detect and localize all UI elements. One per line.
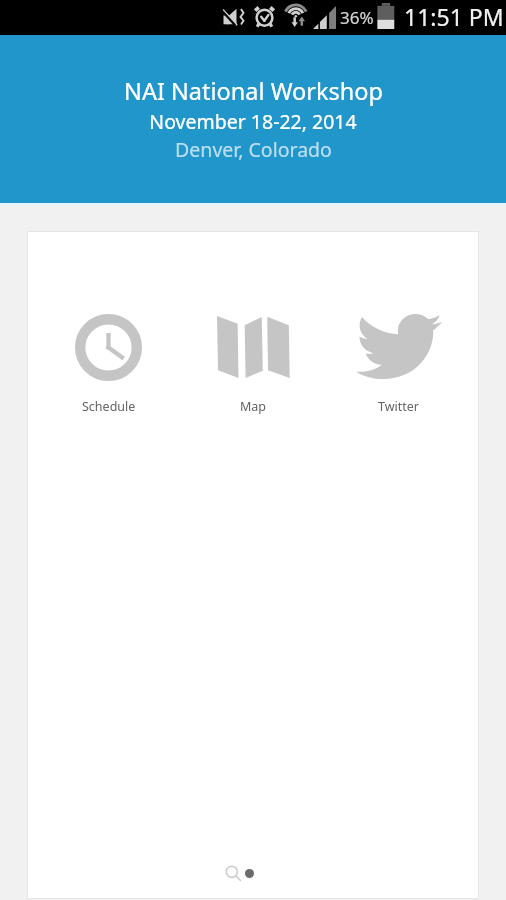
staticText: Schedule [82, 398, 136, 415]
button[interactable]: Search [225, 865, 242, 882]
button[interactable]: Map [181, 314, 326, 415]
staticText: Map [240, 398, 267, 415]
staticText: Twitter [378, 398, 419, 415]
staticText: NAI National Workshop [124, 75, 383, 107]
staticText: 11:51 PM [404, 1, 504, 32]
button[interactable]: Twitter [326, 314, 471, 415]
button[interactable]: Page 1 [245, 869, 254, 878]
staticText: November 18-22, 2014 [149, 108, 357, 135]
staticText: Denver, Colorado [175, 136, 332, 163]
button[interactable]: Schedule [36, 314, 181, 415]
staticText: 36% [340, 6, 374, 29]
